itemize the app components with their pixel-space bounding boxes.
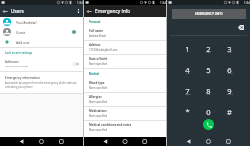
staticText: MNO bbox=[227, 72, 233, 75]
staticText: 2 bbox=[206, 44, 211, 54]
staticText: Andrew Brush bbox=[89, 34, 107, 38]
button[interactable]: Backspace bbox=[237, 23, 245, 31]
staticText: Guest bbox=[16, 30, 26, 34]
button[interactable]: 4 bbox=[177, 65, 198, 75]
button[interactable]: Guest bbox=[0, 27, 83, 37]
staticText: 1 bbox=[185, 44, 190, 54]
button[interactable]: Add users when device is locked bbox=[70, 59, 81, 69]
button[interactable]: Medications bbox=[84, 107, 166, 120]
button[interactable]: 2 bbox=[198, 44, 219, 54]
button[interactable]: More options bbox=[73, 5, 83, 17]
staticText: Allergies bbox=[89, 95, 102, 99]
staticText: 4 bbox=[185, 65, 190, 75]
button[interactable]: Add user bbox=[0, 37, 83, 47]
button[interactable]: 8 bbox=[198, 86, 219, 96]
staticText: None specified bbox=[89, 62, 108, 66]
button[interactable]: Blood type bbox=[84, 79, 166, 92]
staticText: None specified bbox=[89, 86, 108, 90]
staticText: Date of birth bbox=[89, 57, 108, 61]
button[interactable]: Navigate up bbox=[84, 5, 95, 17]
staticText: 9 bbox=[227, 86, 232, 96]
button[interactable]: 1 bbox=[177, 44, 198, 54]
staticText: Medical conditions and notes bbox=[89, 123, 132, 127]
button[interactable]: Full name bbox=[84, 27, 166, 40]
staticText: None specified bbox=[89, 100, 108, 104]
staticText: Accessible by anyone from the emergency … bbox=[5, 81, 77, 88]
staticText: 8 bbox=[206, 86, 211, 96]
button[interactable]: Add users bbox=[0, 57, 83, 71]
staticText: 7 bbox=[185, 86, 190, 96]
staticText: GHI bbox=[186, 72, 190, 75]
staticText: Medications bbox=[89, 109, 107, 113]
staticText: 3 bbox=[227, 44, 232, 54]
staticText: Add user bbox=[16, 40, 30, 44]
staticText: Lock screen settings bbox=[5, 51, 33, 55]
staticText: None specified bbox=[89, 128, 108, 132]
button[interactable]: 3 bbox=[219, 44, 240, 54]
button[interactable]: Navigate up bbox=[0, 5, 11, 17]
staticText: You (Andrew) bbox=[16, 20, 37, 24]
button[interactable]: 9 bbox=[219, 86, 240, 96]
button[interactable]: 5 bbox=[198, 65, 219, 75]
button[interactable]: Emergency information bbox=[0, 72, 83, 93]
staticText: PQRS bbox=[185, 93, 191, 96]
button[interactable]: Call bbox=[203, 119, 214, 130]
staticText: None specified bbox=[89, 114, 108, 118]
staticText: Users bbox=[11, 8, 24, 15]
staticText: WXYZ bbox=[227, 93, 233, 96]
staticText: 6 bbox=[227, 65, 232, 75]
staticText: when device is locked bbox=[5, 65, 29, 68]
button[interactable]: Guest settings bbox=[69, 27, 79, 37]
staticText: Emergency information bbox=[5, 76, 40, 80]
staticText: 1:34 bbox=[244, 1, 250, 5]
staticText: Personal bbox=[89, 20, 101, 24]
button[interactable]: Date of birth bbox=[84, 55, 166, 68]
staticText: Blood type bbox=[89, 81, 105, 85]
button[interactable]: Allergies bbox=[84, 93, 166, 106]
staticText: Address bbox=[89, 43, 101, 47]
staticText: Full name bbox=[89, 29, 104, 33]
staticText: Add users bbox=[5, 60, 19, 64]
button[interactable]: You (Andrew) bbox=[0, 17, 83, 27]
button[interactable]: 7 bbox=[177, 86, 198, 96]
staticText: Emergency info bbox=[95, 8, 131, 15]
staticText: TUV bbox=[206, 93, 211, 96]
button[interactable]: EMERGENCY INFO bbox=[172, 9, 246, 19]
staticText: Medical bbox=[89, 72, 100, 76]
staticText: * bbox=[185, 107, 190, 117]
staticText: 0 bbox=[206, 107, 211, 117]
button[interactable]: 6 bbox=[219, 65, 240, 75]
button[interactable]: 0 bbox=[198, 107, 219, 117]
staticText: 1313 Mockingbird Lane bbox=[89, 48, 118, 52]
staticText: + bbox=[208, 114, 210, 117]
staticText: ABC bbox=[206, 51, 211, 54]
staticText: DEF bbox=[228, 51, 232, 54]
staticText: EMERGENCY INFO bbox=[195, 12, 223, 16]
staticText: # bbox=[227, 107, 232, 117]
button[interactable]: # bbox=[219, 107, 240, 117]
staticText: 1:34 bbox=[77, 1, 83, 5]
button[interactable]: * bbox=[177, 107, 198, 117]
button[interactable]: Medical conditions and notes bbox=[84, 121, 166, 134]
staticText: 5 bbox=[206, 65, 211, 75]
staticText: 1:34 bbox=[160, 1, 166, 5]
button[interactable]: Address bbox=[84, 41, 166, 54]
staticText: JKL bbox=[207, 72, 211, 75]
